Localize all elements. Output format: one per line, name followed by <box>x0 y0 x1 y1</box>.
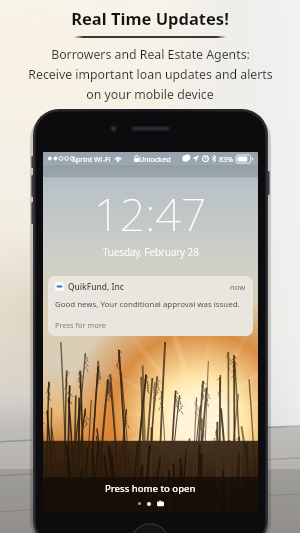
staticText: QuikFund, Inc <box>68 281 124 292</box>
staticText: Borrowers and Real Estate Agents: <box>51 46 250 63</box>
staticText: 12:47 <box>94 183 207 244</box>
staticText: on your mobile device <box>86 86 214 103</box>
staticText: Sprint Wi-Fi <box>72 154 111 164</box>
staticText: Tuesday, February 28 <box>103 245 199 259</box>
staticText: now <box>230 282 246 292</box>
button[interactable]: QuikFund, Inc <box>48 276 253 336</box>
button[interactable]: Page 1 <box>138 502 141 505</box>
staticText: 83% <box>219 154 234 164</box>
staticText: Press for more <box>55 320 106 330</box>
staticText: Real Time Updates! <box>71 7 229 29</box>
staticText: Receive important loan updates and alert… <box>28 66 273 83</box>
staticText: Unlocked <box>139 154 171 164</box>
staticText: Good news, Your conditional approval was… <box>55 299 240 310</box>
button[interactable]: Camera <box>157 500 164 507</box>
staticText: Press home to open <box>105 482 196 495</box>
button[interactable]: Page 2, current <box>147 502 151 506</box>
